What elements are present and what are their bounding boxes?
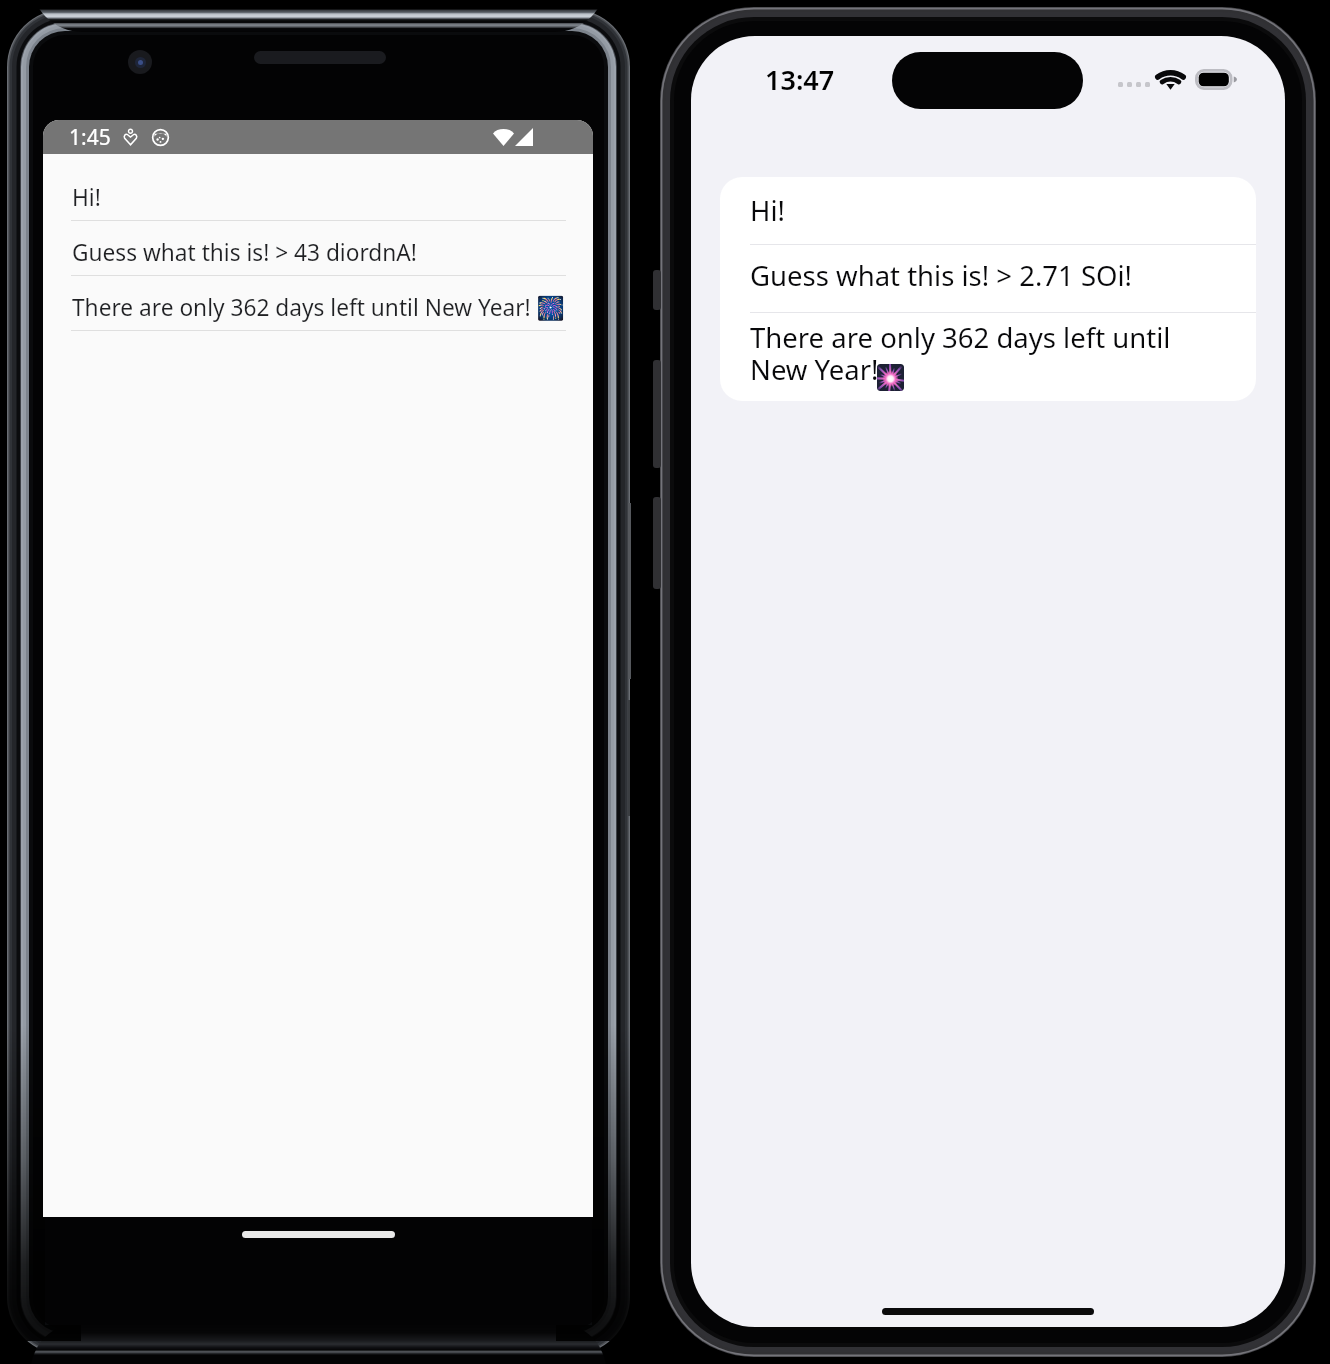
staticText: There are only 362 days left until New Y… <box>72 292 565 323</box>
other: Notification <box>124 129 137 145</box>
button[interactable]: Hi! <box>43 166 593 221</box>
staticText: Hi! <box>72 182 101 213</box>
staticText: Guess what this is! > 2.71 SOi! <box>750 257 1132 294</box>
staticText: There are only 362 days left until New Y… <box>750 319 1171 388</box>
button[interactable]: Guess what this is! > 43 diordnA! <box>43 221 593 276</box>
other: Cellular signal <box>515 128 533 146</box>
staticText: Guess what this is! > 43 diordnA! <box>72 237 417 268</box>
button[interactable]: Hi! <box>720 177 1256 244</box>
other: Wi-Fi <box>493 128 514 146</box>
button[interactable]: There are only 362 days left until New Y… <box>43 276 593 331</box>
staticText: 13:47 <box>765 61 835 98</box>
other: App notification <box>152 129 169 146</box>
other: Battery <box>1195 69 1237 90</box>
staticText: Hi! <box>750 192 785 229</box>
button[interactable]: Guess what this is! > 2.71 SOi! <box>720 245 1256 312</box>
staticText: 1:45 <box>69 123 111 152</box>
other: Wi-Fi <box>1157 69 1184 90</box>
button[interactable]: There are only 362 days left until New Y… <box>720 313 1256 401</box>
